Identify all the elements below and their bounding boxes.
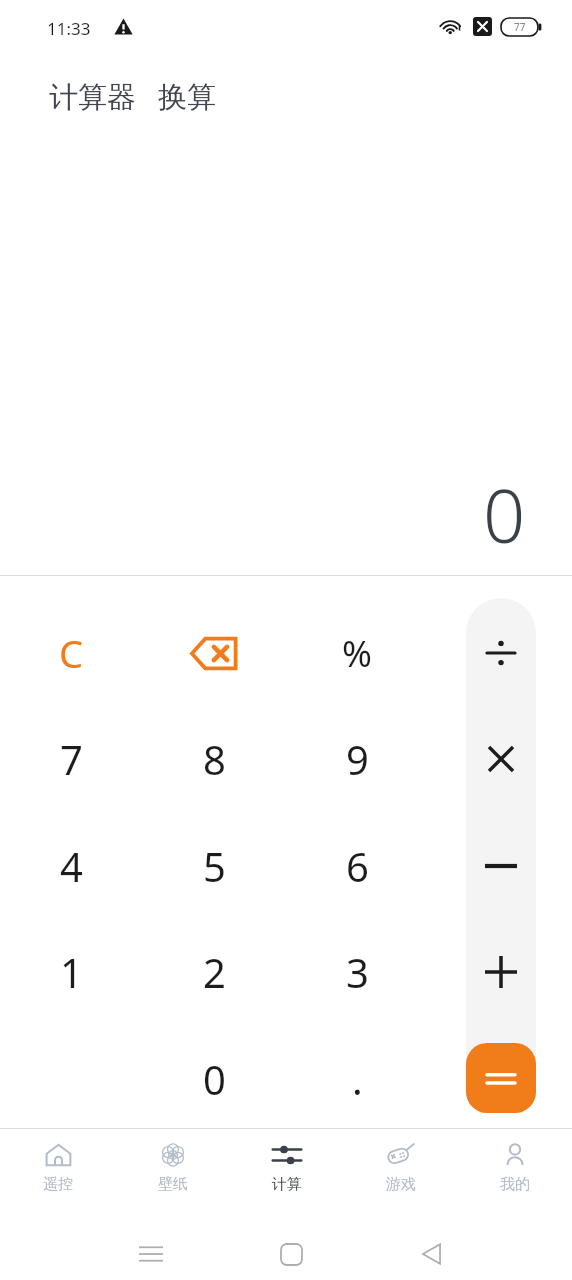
staticText: 换算 [158,79,216,116]
button[interactable]: 遥控 [0,1129,115,1214]
button[interactable]: 2 [155,922,273,1022]
button[interactable]: Equals [466,1043,536,1113]
button[interactable]: 计算器 [49,79,136,116]
staticText: 壁纸 [158,1175,188,1194]
button[interactable]: . [298,1029,416,1129]
staticText: 5 [203,839,226,893]
button[interactable]: 1 [12,922,130,1022]
button[interactable]: C [12,603,130,703]
button[interactable]: 4 [12,816,130,916]
staticText: 3 [346,945,369,999]
staticText: 8 [203,732,226,786]
button[interactable]: 3 [298,922,416,1022]
button[interactable]: 9 [298,709,416,809]
staticText: % [342,629,372,678]
button[interactable]: 8 [155,709,273,809]
staticText: 77 [514,20,526,34]
staticText: 计算 [272,1175,302,1194]
staticText: 计算器 [49,79,136,116]
staticText: 遥控 [43,1175,73,1194]
button[interactable]: Back [401,1224,461,1280]
button[interactable]: Multiply [466,709,536,809]
button[interactable]: Minus [466,816,536,916]
button[interactable]: 0 [155,1029,273,1129]
staticText: . [352,1052,363,1106]
button[interactable]: Plus [466,922,536,1022]
staticText: 我的 [500,1175,530,1194]
button[interactable]: % [298,603,416,703]
button[interactable]: 壁纸 [115,1129,230,1214]
button[interactable]: 6 [298,816,416,916]
staticText: 7 [60,732,83,786]
button[interactable]: Divide [466,603,536,703]
staticText: 0 [483,464,526,565]
staticText: 4 [60,839,83,893]
staticText: 0 [203,1052,226,1106]
button[interactable]: 5 [155,816,273,916]
button[interactable]: 计算 [230,1129,344,1214]
button[interactable]: Backspace [155,603,273,703]
staticText: 2 [203,945,226,999]
button[interactable]: 7 [12,709,130,809]
staticText: 6 [346,839,369,893]
staticText: 11:33 [47,17,91,40]
button[interactable]: Recents [121,1224,181,1280]
staticText: C [59,627,84,679]
button[interactable]: 游戏 [344,1129,458,1214]
button[interactable]: Home [261,1224,321,1280]
button[interactable]: 我的 [458,1129,572,1214]
staticText: 1 [60,945,83,999]
staticText: 9 [346,732,369,786]
staticText: 游戏 [386,1175,416,1194]
button[interactable]: 换算 [158,79,216,116]
